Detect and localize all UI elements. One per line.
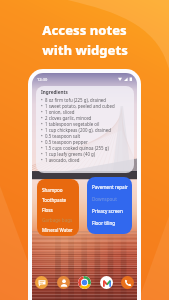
- staticText: Garbage bags: [42, 217, 73, 223]
- staticText: with widgets: [42, 41, 128, 59]
- button[interactable]: Pavement repair: [87, 177, 132, 234]
- staticText: Pavement repair: [92, 184, 128, 190]
- staticText: •: [41, 151, 43, 157]
- staticText: •: [41, 115, 43, 121]
- staticText: •: [41, 103, 43, 109]
- staticText: •: [41, 121, 43, 127]
- staticText: 2 cloves garlic, minced: [45, 115, 92, 121]
- staticText: •: [41, 157, 43, 163]
- button[interactable]: Contacts: [57, 276, 70, 289]
- staticText: 1 cup chickpeas (200 g), drained: [45, 127, 111, 133]
- staticText: Floor tiling: [92, 220, 116, 226]
- staticText: 0.5 teaspoon pepper: [45, 139, 88, 145]
- staticText: •: [41, 139, 43, 145]
- staticText: Floss: [42, 207, 53, 213]
- staticText: 8 oz firm tofu (225 g), drained: [45, 97, 107, 103]
- button[interactable]: Ingredients: [36, 86, 134, 173]
- button[interactable]: Shampoo: [37, 179, 79, 236]
- staticText: •: [41, 127, 43, 133]
- staticText: 1 cup leafy greens (40 g): [45, 151, 96, 157]
- staticText: Toothpaste: [42, 197, 67, 203]
- button[interactable]: Phone: [121, 276, 134, 289]
- staticText: Ingredients: [41, 89, 68, 95]
- staticText: 0.5 teaspoon salt: [45, 133, 81, 139]
- staticText: 1.5 cups cooked quinoa (255 g): [45, 145, 109, 151]
- button[interactable]: Gmail: [100, 276, 113, 289]
- staticText: Downspout: [92, 196, 117, 202]
- staticText: •: [41, 97, 43, 103]
- staticText: 1 tablespoon vegetable oil: [45, 121, 100, 127]
- staticText: •: [41, 145, 43, 151]
- staticText: Privacy screen: [92, 208, 123, 214]
- staticText: Mineral Water: [42, 227, 73, 233]
- staticText: •: [41, 133, 43, 139]
- staticText: 12:30: [37, 77, 48, 82]
- button[interactable]: Messages: [35, 276, 48, 289]
- staticText: 1 avocado, diced: [45, 157, 80, 163]
- staticText: •: [41, 109, 43, 115]
- staticText: 1 onion, sliced: [45, 109, 75, 115]
- staticText: Access notes: [42, 21, 127, 39]
- staticText: 1 sweet potato, peeled and cubed: [45, 103, 115, 109]
- staticText: Shampoo: [42, 187, 63, 193]
- button[interactable]: Chrome: [78, 276, 91, 289]
